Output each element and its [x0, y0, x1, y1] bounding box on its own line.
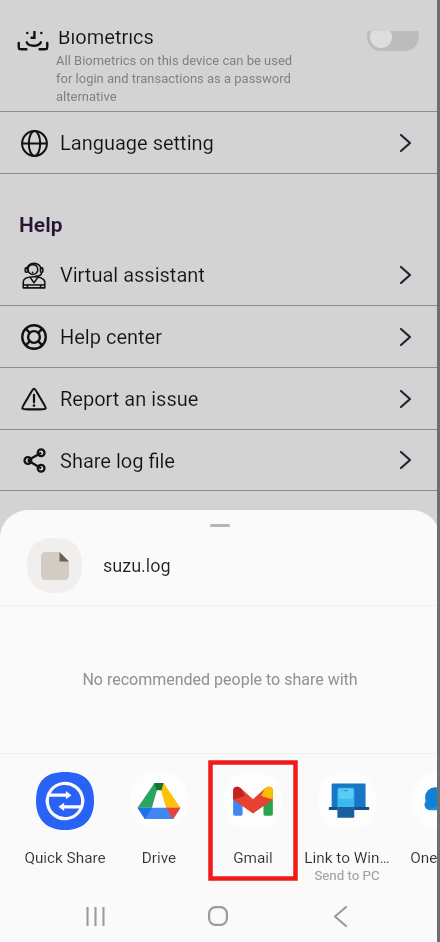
- staticText: All Biometrics on this device can be use…: [56, 53, 293, 104]
- button[interactable]: Report an issue: [0, 368, 440, 429]
- staticText: suzu.log: [103, 555, 171, 576]
- staticText: Virtual assistant: [60, 263, 205, 286]
- staticText: OneDrive: [396, 849, 440, 867]
- button[interactable]: Drive: [114, 754, 204, 884]
- button[interactable]: OneDrive: [396, 754, 440, 884]
- staticText: No recommended people to share with: [0, 670, 440, 689]
- button[interactable]: Help center: [0, 306, 440, 367]
- button[interactable]: Back: [294, 890, 386, 942]
- button[interactable]: Gmail: [208, 754, 298, 884]
- button[interactable]: Virtual assistant: [0, 244, 440, 305]
- button[interactable]: Home: [172, 890, 264, 942]
- staticText: Drive: [114, 849, 204, 867]
- staticText: Language setting: [60, 131, 214, 154]
- staticText: Share log file: [60, 449, 175, 472]
- staticText: Help center: [60, 325, 162, 348]
- staticText: Gmail: [208, 849, 298, 867]
- staticText: Help: [19, 213, 63, 238]
- button[interactable]: [367, 23, 419, 51]
- button[interactable]: Recent apps: [49, 890, 141, 942]
- staticText: Send to PC: [302, 868, 392, 884]
- button[interactable]: Language setting: [0, 112, 440, 173]
- staticText: Quick Share: [20, 849, 110, 867]
- button[interactable]: Share log file: [0, 430, 440, 490]
- staticText: Report an issue: [60, 387, 199, 410]
- button[interactable]: Link to Win…: [302, 754, 392, 884]
- staticText: Link to Win…: [302, 849, 392, 867]
- button[interactable]: Quick Share: [20, 754, 110, 884]
- staticText: Biometrics: [58, 25, 154, 48]
- button[interactable]: suzu.log: [0, 530, 440, 601]
